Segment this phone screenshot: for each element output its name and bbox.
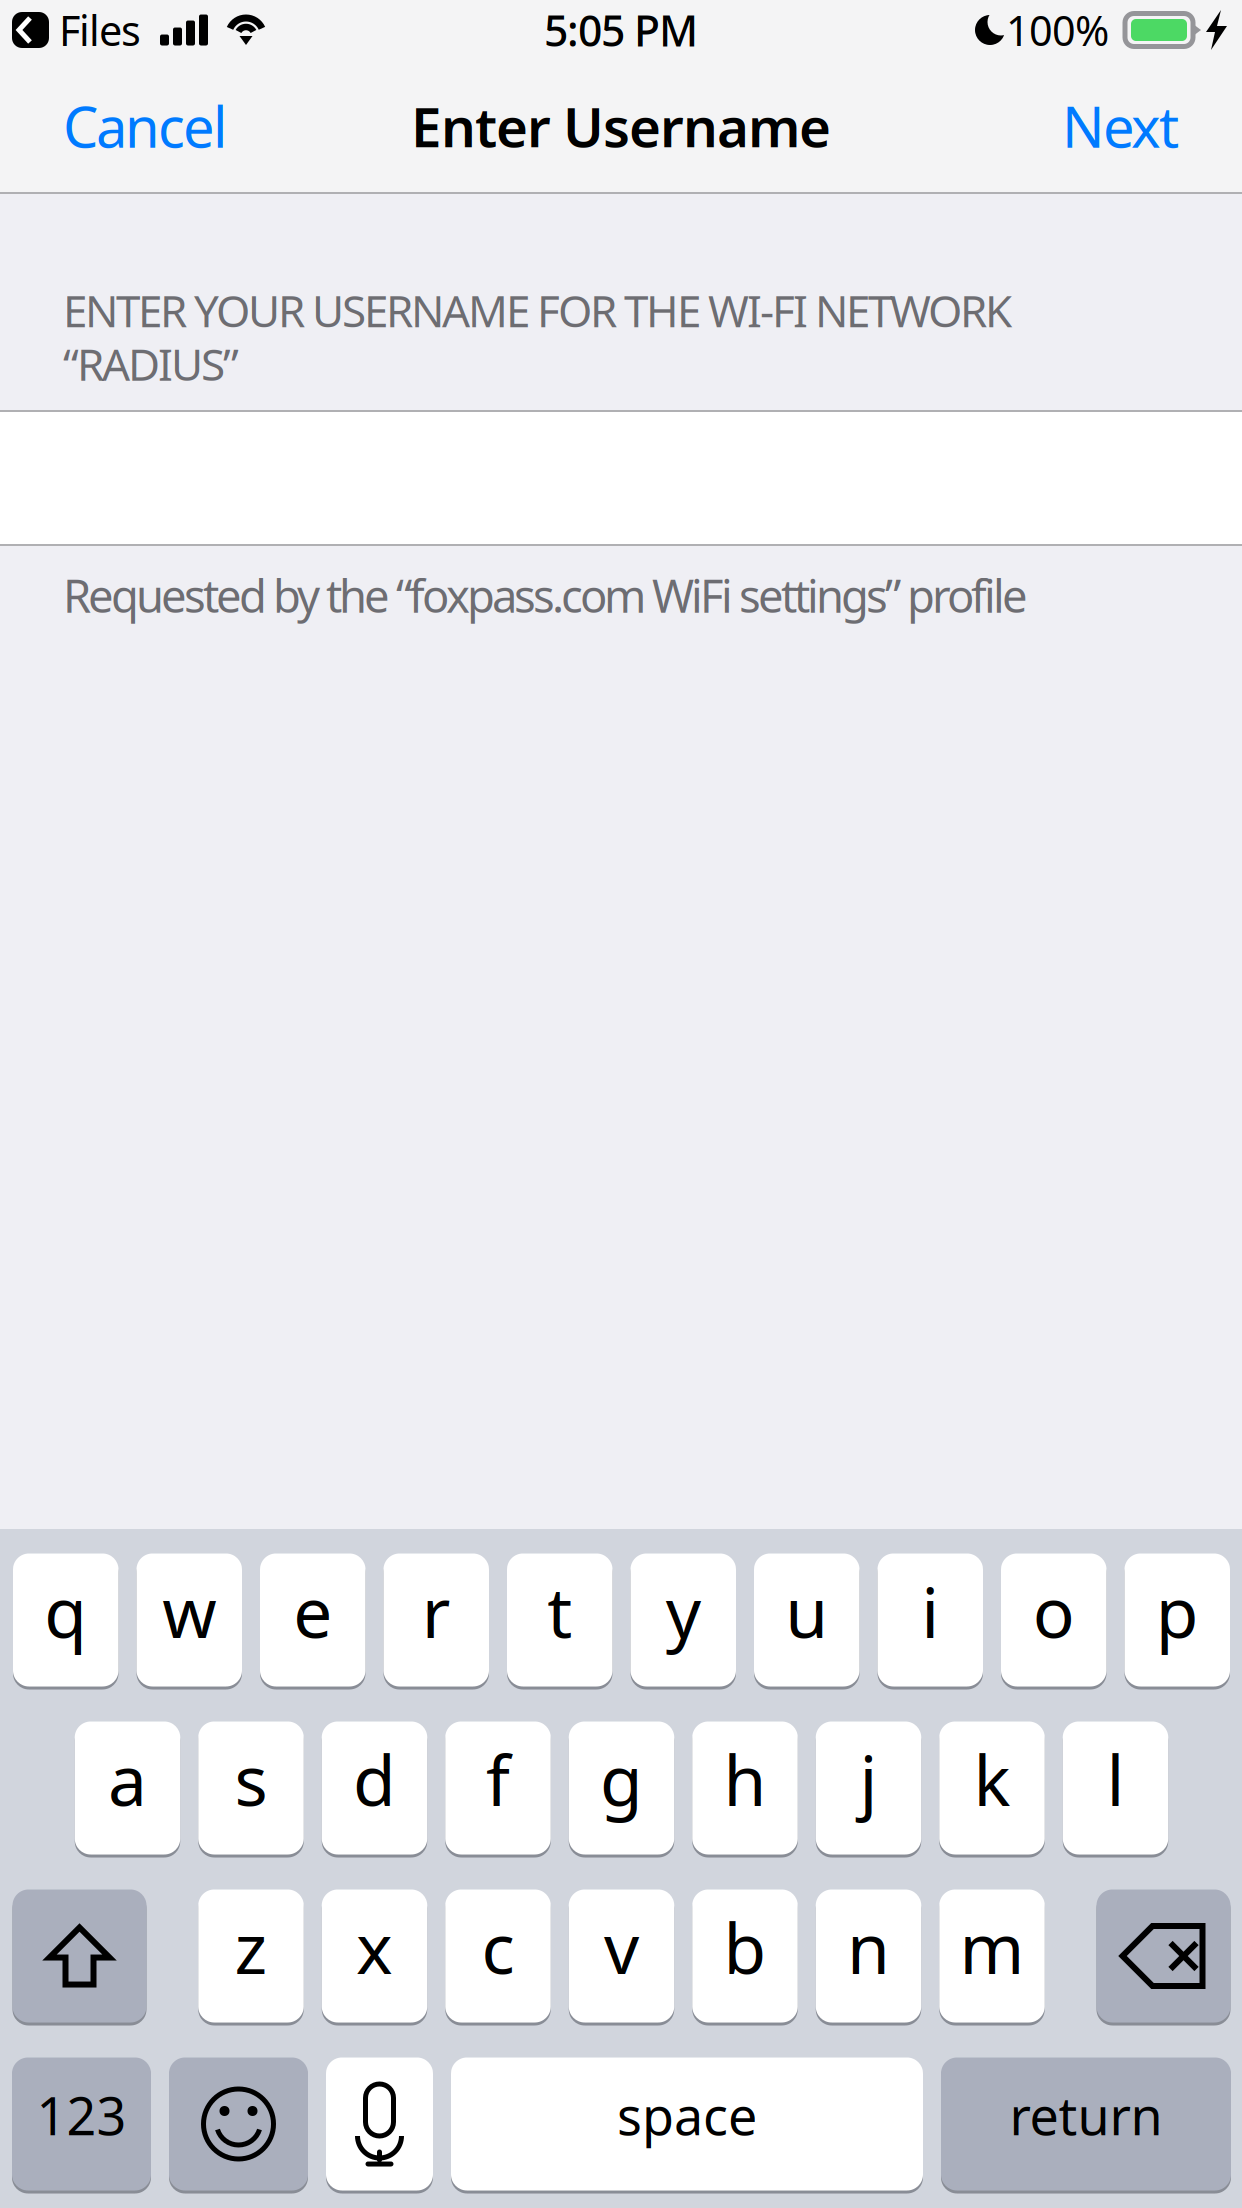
- button[interactable]: a: [75, 1720, 180, 1856]
- staticText: c: [481, 1901, 514, 1993]
- staticText: t: [547, 1565, 572, 1657]
- staticText: e: [293, 1565, 332, 1657]
- button[interactable]: Next: [1042, 60, 1199, 192]
- button[interactable]: n: [816, 1888, 921, 2024]
- button[interactable]: c: [445, 1888, 551, 2024]
- button[interactable]: k: [939, 1720, 1045, 1856]
- staticText: z: [234, 1901, 267, 1993]
- button[interactable]: p: [1124, 1552, 1230, 1688]
- staticText: s: [234, 1733, 267, 1825]
- staticText: r: [422, 1565, 451, 1657]
- button[interactable]: m: [939, 1888, 1045, 2024]
- staticText: i: [921, 1565, 939, 1657]
- staticText: q: [44, 1565, 87, 1657]
- staticText: j: [859, 1733, 877, 1825]
- button[interactable]: space: [451, 2056, 923, 2192]
- button[interactable]: t: [507, 1552, 612, 1688]
- staticText: 123: [36, 2080, 126, 2150]
- staticText: ENTER YOUR USERNAME FOR THE WI-FI NETWOR…: [63, 281, 1012, 339]
- staticText: g: [600, 1733, 643, 1825]
- button[interactable]: Delete: [1096, 1888, 1230, 2024]
- button[interactable]: b: [692, 1888, 798, 2024]
- staticText: x: [356, 1901, 393, 1993]
- button[interactable]: j: [816, 1720, 921, 1856]
- button[interactable]: x: [322, 1888, 427, 2024]
- button[interactable]: i: [877, 1552, 983, 1688]
- button[interactable]: Shift: [12, 1888, 146, 2024]
- staticText: p: [1156, 1565, 1199, 1657]
- staticText: Requested by the “foxpass.com WiFi setti…: [63, 565, 1028, 625]
- staticText: Enter Username: [411, 90, 831, 162]
- staticText: 100%: [1006, 3, 1109, 57]
- staticText: o: [1033, 1565, 1075, 1657]
- button[interactable]: z: [198, 1888, 304, 2024]
- button[interactable]: Cancel: [43, 60, 247, 192]
- button[interactable]: d: [322, 1720, 427, 1856]
- button[interactable]: v: [569, 1888, 674, 2024]
- button[interactable]: g: [569, 1720, 674, 1856]
- staticText: b: [723, 1901, 766, 1993]
- staticText: return: [1009, 2080, 1162, 2150]
- staticText: m: [959, 1901, 1024, 1993]
- button[interactable]: q: [13, 1552, 118, 1688]
- button[interactable]: return: [941, 2056, 1231, 2192]
- staticText: k: [973, 1733, 1010, 1825]
- staticText: 5:05 PM: [544, 2, 698, 58]
- staticText: f: [486, 1733, 510, 1825]
- staticText: n: [847, 1901, 890, 1993]
- button[interactable]: e: [260, 1552, 365, 1688]
- staticText: a: [108, 1733, 147, 1825]
- button[interactable]: Dictation: [326, 2056, 433, 2192]
- staticText: h: [723, 1733, 766, 1825]
- staticText: Cancel: [63, 89, 227, 163]
- staticText: d: [353, 1733, 396, 1825]
- button[interactable]: l: [1063, 1720, 1168, 1856]
- button[interactable]: h: [692, 1720, 798, 1856]
- button[interactable]: w: [136, 1552, 242, 1688]
- button[interactable]: f: [445, 1720, 551, 1856]
- staticText: space: [617, 2080, 757, 2150]
- staticText: y: [666, 1565, 701, 1657]
- staticText: Next: [1062, 89, 1179, 163]
- staticText: l: [1106, 1733, 1124, 1825]
- button[interactable]: o: [1001, 1552, 1106, 1688]
- staticText: Files: [59, 3, 141, 57]
- staticText: v: [604, 1901, 639, 1993]
- staticText: w: [162, 1565, 216, 1657]
- staticText: “RADIUS”: [63, 334, 239, 393]
- button[interactable]: y: [630, 1552, 736, 1688]
- staticText: u: [785, 1565, 828, 1657]
- button[interactable]: u: [754, 1552, 859, 1688]
- button[interactable]: Emoji: [169, 2056, 308, 2192]
- button[interactable]: 123: [12, 2056, 151, 2192]
- button[interactable]: s: [198, 1720, 304, 1856]
- button[interactable]: r: [383, 1552, 489, 1688]
